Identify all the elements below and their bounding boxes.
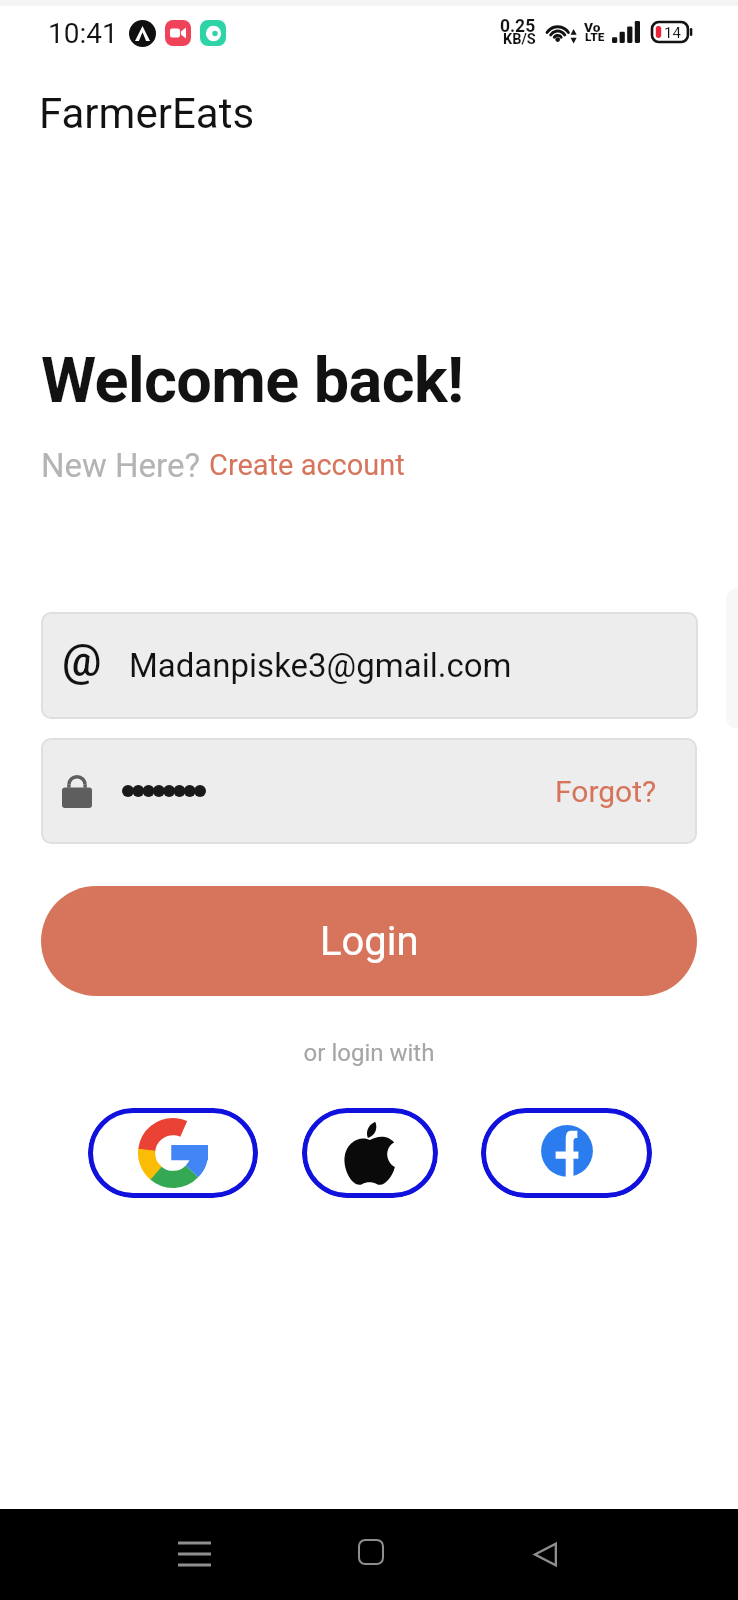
button[interactable]: Sign in with Facebook — [481, 1108, 652, 1198]
button[interactable]: @ — [41, 612, 698, 719]
staticText: Login — [320, 918, 419, 965]
button[interactable]: Forgot? — [541, 758, 671, 825]
staticText: Forgot? — [555, 774, 657, 809]
button[interactable]: Back — [505, 1514, 585, 1594]
staticText: Create account — [209, 448, 405, 482]
staticText: FarmerEats — [39, 89, 255, 138]
button[interactable]: Forgot? — [41, 738, 697, 844]
staticText: or login with — [0, 1039, 738, 1067]
staticText: 10:41 — [48, 17, 118, 50]
button[interactable]: Login — [41, 886, 697, 996]
staticText: 0.25 — [500, 16, 536, 37]
staticText: Vo — [584, 19, 601, 35]
button[interactable]: Recent apps — [154, 1514, 234, 1594]
staticText: LTE — [585, 30, 605, 44]
button[interactable]: Sign in with Apple — [302, 1108, 438, 1198]
staticText: @ — [62, 635, 102, 687]
button[interactable]: Create account — [209, 451, 405, 485]
staticText: KB/S — [503, 31, 536, 48]
staticText: New Here? — [41, 446, 209, 485]
staticText: Welcome back! — [41, 344, 464, 418]
button[interactable]: Home — [331, 1512, 411, 1592]
staticText: Madanpiske3@gmail.com — [129, 646, 512, 685]
staticText: 14 — [664, 24, 681, 42]
button[interactable]: Sign in with Google — [88, 1108, 258, 1198]
